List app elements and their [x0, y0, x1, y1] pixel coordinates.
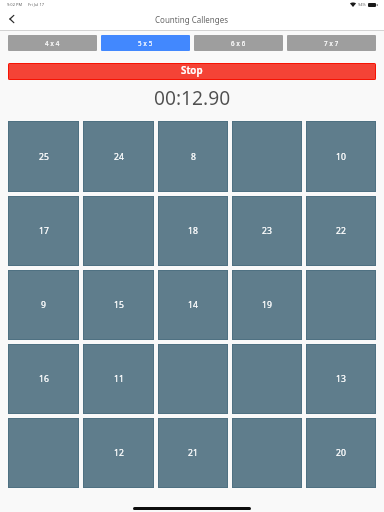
button[interactable]: [8, 418, 79, 488]
button[interactable]: [232, 121, 302, 192]
staticText: 00:12.90: [154, 84, 231, 110]
staticText: Stop: [181, 64, 203, 77]
button[interactable]: 17: [8, 196, 79, 266]
staticText: 8: [191, 151, 196, 163]
staticText: 19: [262, 299, 272, 311]
staticText: Fri Jul 17: [28, 2, 45, 7]
staticText: 23: [262, 225, 272, 237]
button[interactable]: 15: [83, 270, 154, 340]
button[interactable]: 24: [83, 121, 154, 192]
button[interactable]: Back: [3, 10, 21, 28]
button[interactable]: 9: [8, 270, 79, 340]
button[interactable]: 22: [306, 196, 376, 266]
staticText: 4 x 4: [45, 39, 60, 47]
button[interactable]: 18: [158, 196, 228, 266]
button[interactable]: 4 x 4: [8, 35, 97, 51]
staticText: Counting Callenges: [155, 14, 229, 25]
staticText: 12: [114, 447, 124, 459]
button[interactable]: [158, 344, 228, 414]
staticText: 10: [336, 151, 346, 163]
button[interactable]: 23: [232, 196, 302, 266]
staticText: 15: [114, 299, 124, 311]
button[interactable]: [232, 344, 302, 414]
button[interactable]: 11: [83, 344, 154, 414]
staticText: 6 x 6: [231, 39, 246, 47]
staticText: 7 x 7: [324, 39, 339, 47]
button[interactable]: [306, 270, 376, 340]
staticText: 22: [336, 225, 346, 237]
staticText: 11: [114, 373, 124, 385]
button[interactable]: 14: [158, 270, 228, 340]
button[interactable]: [232, 418, 302, 488]
staticText: 14: [188, 299, 198, 311]
button[interactable]: 6 x 6: [194, 35, 283, 51]
staticText: 94%: [358, 2, 366, 7]
button[interactable]: 21: [158, 418, 228, 488]
staticText: 24: [114, 151, 124, 163]
button[interactable]: 20: [306, 418, 376, 488]
staticText: 9: [41, 299, 46, 311]
button[interactable]: 25: [8, 121, 79, 192]
button[interactable]: 5 x 5: [101, 35, 190, 51]
staticText: 20: [336, 447, 346, 459]
staticText: 16: [39, 373, 49, 385]
button[interactable]: 12: [83, 418, 154, 488]
button[interactable]: [83, 196, 154, 266]
button[interactable]: Stop: [8, 63, 376, 80]
staticText: 21: [188, 447, 198, 459]
staticText: 9:02 PM: [7, 2, 23, 7]
staticText: 25: [39, 151, 49, 163]
staticText: 17: [39, 225, 49, 237]
button[interactable]: 16: [8, 344, 79, 414]
button[interactable]: 10: [306, 121, 376, 192]
button[interactable]: 13: [306, 344, 376, 414]
staticText: 13: [336, 373, 346, 385]
button[interactable]: 8: [158, 121, 228, 192]
button[interactable]: 19: [232, 270, 302, 340]
staticText: 18: [188, 225, 198, 237]
staticText: 5 x 5: [138, 39, 153, 47]
button[interactable]: 7 x 7: [287, 35, 376, 51]
